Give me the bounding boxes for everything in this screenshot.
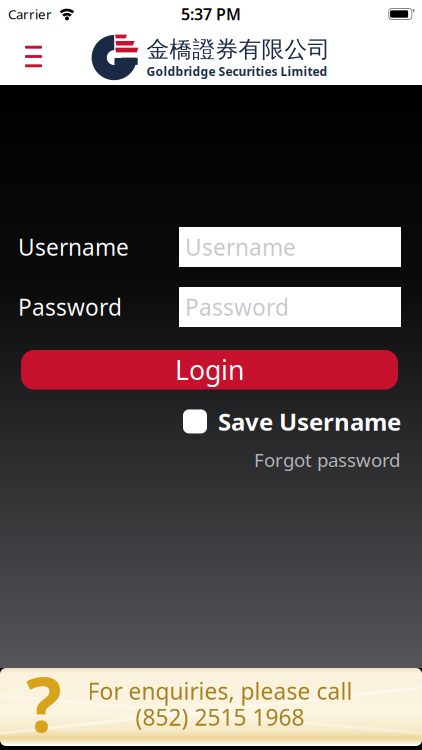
staticText: Goldbridge Securities Limited [146,63,327,79]
button[interactable]: Forgot password [0,447,422,472]
staticText: 金橋證券有限公司 [146,36,330,63]
staticText: Save Username [218,405,401,437]
staticText: Username [185,232,296,262]
staticText: (852) 2515 1968 [135,702,304,732]
staticText: Carrier [8,5,52,23]
staticText: Username [18,232,129,262]
button[interactable]: Save Username [0,405,422,437]
staticText: 5:37 PM [181,3,241,25]
staticText: Password [185,292,289,322]
button[interactable]: Login [0,350,422,389]
staticText: Forgot password [254,447,400,472]
button[interactable]: Call (852) 2515 1968 [0,668,422,746]
staticText: For enquiries, please call [87,676,352,706]
staticText: Password [18,292,122,322]
staticText: Login [175,352,244,387]
staticText: ? [26,653,62,750]
button[interactable]: Menu [0,28,56,85]
